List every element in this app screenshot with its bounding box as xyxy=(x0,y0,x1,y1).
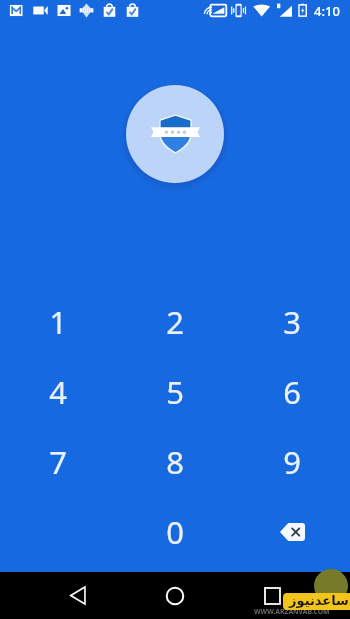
staticText: 9 xyxy=(283,441,301,483)
staticText: 2 xyxy=(166,301,184,343)
staticText: 8 xyxy=(166,441,184,483)
staticText: 1 xyxy=(49,301,67,343)
button[interactable]: 6 xyxy=(243,358,341,426)
button[interactable]: 0 xyxy=(126,498,224,566)
button[interactable]: 2 xyxy=(126,288,224,356)
button[interactable]: Delete xyxy=(243,498,341,566)
button[interactable]: Back xyxy=(54,572,102,619)
staticText: 4 xyxy=(49,371,67,413)
staticText: WWW.ARZANVAB.COM xyxy=(254,607,330,616)
staticText: 3 xyxy=(283,301,301,343)
button[interactable]: 1 xyxy=(9,288,107,356)
button[interactable]: 4 xyxy=(9,358,107,426)
staticText: ساعدنیوز xyxy=(289,593,349,608)
button[interactable]: 9 xyxy=(243,428,341,496)
staticText: 0 xyxy=(166,511,184,553)
staticText: 5 xyxy=(166,371,184,413)
button[interactable]: Recent apps xyxy=(248,572,296,619)
staticText: 7 xyxy=(49,441,67,483)
staticText: 4:10 xyxy=(314,2,340,20)
button[interactable]: 7 xyxy=(9,428,107,496)
button[interactable]: 5 xyxy=(126,358,224,426)
button[interactable]: 8 xyxy=(126,428,224,496)
button[interactable]: Home xyxy=(151,572,199,619)
staticText: 6 xyxy=(283,371,301,413)
button[interactable]: 3 xyxy=(243,288,341,356)
